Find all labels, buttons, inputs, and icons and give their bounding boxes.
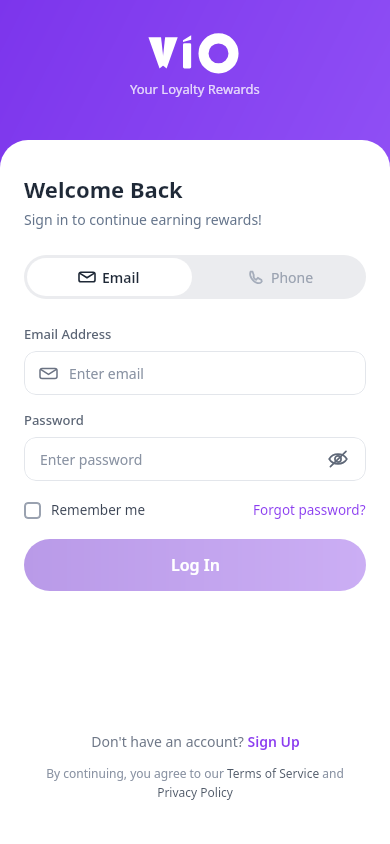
staticText: Welcome Back xyxy=(24,174,183,204)
button[interactable]: Remember me xyxy=(24,501,146,519)
staticText: Forgot password? xyxy=(253,501,366,519)
staticText: Enter password xyxy=(40,450,324,469)
staticText: Password xyxy=(24,411,84,429)
staticText: By continuing, you agree to our Terms of… xyxy=(30,765,360,800)
staticText: Don't have an account? Sign Up xyxy=(91,732,300,751)
staticText: Log In xyxy=(171,554,220,576)
button[interactable]: Don't have an account? Sign Up xyxy=(24,732,366,751)
staticText: Email Address xyxy=(24,325,112,343)
staticText: Phone xyxy=(271,268,314,287)
staticText: Enter email xyxy=(69,364,144,383)
staticText: Your Loyalty Rewards xyxy=(130,80,260,98)
button[interactable]: Enter email xyxy=(24,351,366,395)
staticText: Email xyxy=(102,268,140,287)
staticText: Remember me xyxy=(51,501,146,519)
button[interactable]: Email xyxy=(27,258,192,296)
other: ViO logo xyxy=(147,30,243,70)
button[interactable]: Enter password xyxy=(24,437,366,481)
button[interactable]: Phone xyxy=(195,255,366,299)
button[interactable]: Forgot password? xyxy=(253,501,366,519)
button[interactable]: Log In xyxy=(24,539,366,591)
button[interactable]: Show password xyxy=(324,445,352,473)
staticText: Sign in to continue earning rewards! xyxy=(24,210,262,229)
